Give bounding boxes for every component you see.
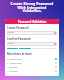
- staticText: ••••••: [8, 42, 14, 46]
- button[interactable]: ••••••: [7, 42, 57, 46]
- other: Show password: [54, 32, 56, 34]
- other: Show confirm password: [54, 43, 56, 45]
- button[interactable]: 1 number: [7, 65, 57, 68]
- staticText: Create Strong Password With Integrated V…: [0, 1, 64, 13]
- button[interactable]: 1 uppercase: [7, 61, 57, 64]
- staticText: ••••••: [8, 31, 14, 35]
- staticText: 1 symbol: [7, 69, 18, 72]
- staticText: 1 uppercase: [7, 61, 22, 64]
- staticText: Create Password: [7, 26, 29, 30]
- staticText: Password Validation: [18, 20, 47, 24]
- staticText: 1 number: [7, 65, 19, 68]
- staticText: Must have at least: [7, 52, 32, 56]
- button[interactable]: Password Validation: [5, 19, 59, 24]
- staticText: 8 characters: [7, 57, 22, 60]
- button[interactable]: ••••••: [7, 31, 57, 35]
- button[interactable]: 8 characters: [7, 57, 57, 60]
- button[interactable]: 1 symbol: [7, 69, 57, 72]
- staticText: Confirm Password: [7, 37, 31, 41]
